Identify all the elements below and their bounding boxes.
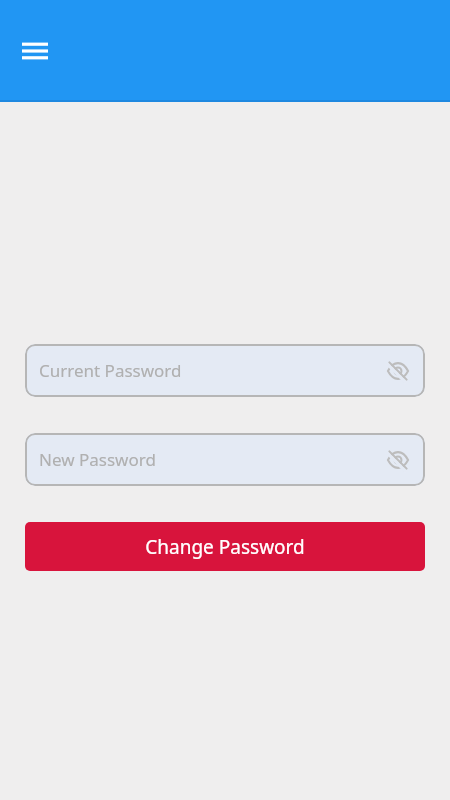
staticText: Current Password (39, 359, 182, 382)
button[interactable]: Open navigation menu (15, 31, 55, 71)
staticText: Change Password (145, 534, 305, 560)
button[interactable]: Show password (379, 441, 417, 479)
button[interactable]: Change Password (25, 522, 425, 571)
button[interactable]: Show password (379, 352, 417, 390)
button[interactable]: New Password (25, 433, 425, 486)
button[interactable]: Current Password (25, 344, 425, 397)
staticText: New Password (39, 448, 156, 471)
